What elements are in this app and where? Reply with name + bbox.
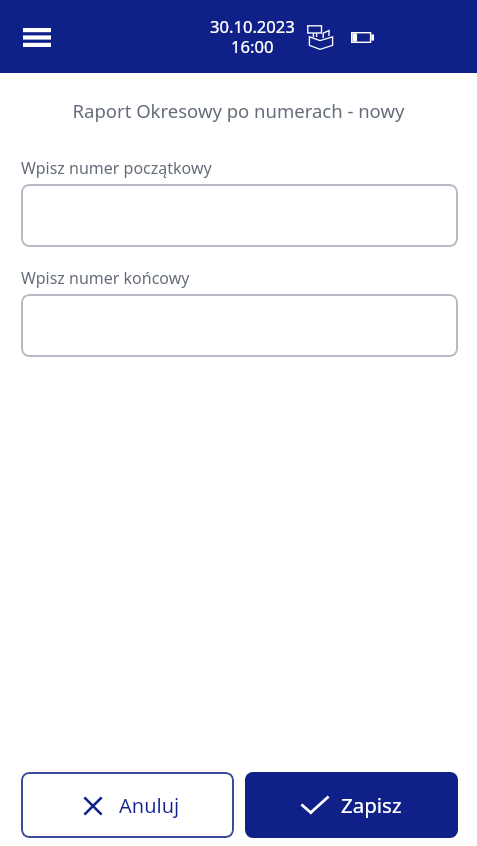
button[interactable]: Anuluj (21, 772, 234, 838)
button[interactable]: Menu (7, 9, 67, 65)
staticText: 30.10.2023 (210, 15, 295, 38)
staticText: Zapisz (341, 791, 402, 819)
staticText: Wpisz numer końcowy (21, 267, 190, 289)
staticText: Wpisz numer początkowy (21, 157, 212, 179)
staticText: 16:00 (231, 35, 274, 58)
button[interactable]: Zapisz (245, 772, 458, 838)
button[interactable] (21, 184, 458, 247)
staticText: Raport Okresowy po numerach - nowy (0, 98, 477, 123)
staticText: Anuluj (119, 792, 180, 819)
button[interactable] (21, 294, 458, 357)
